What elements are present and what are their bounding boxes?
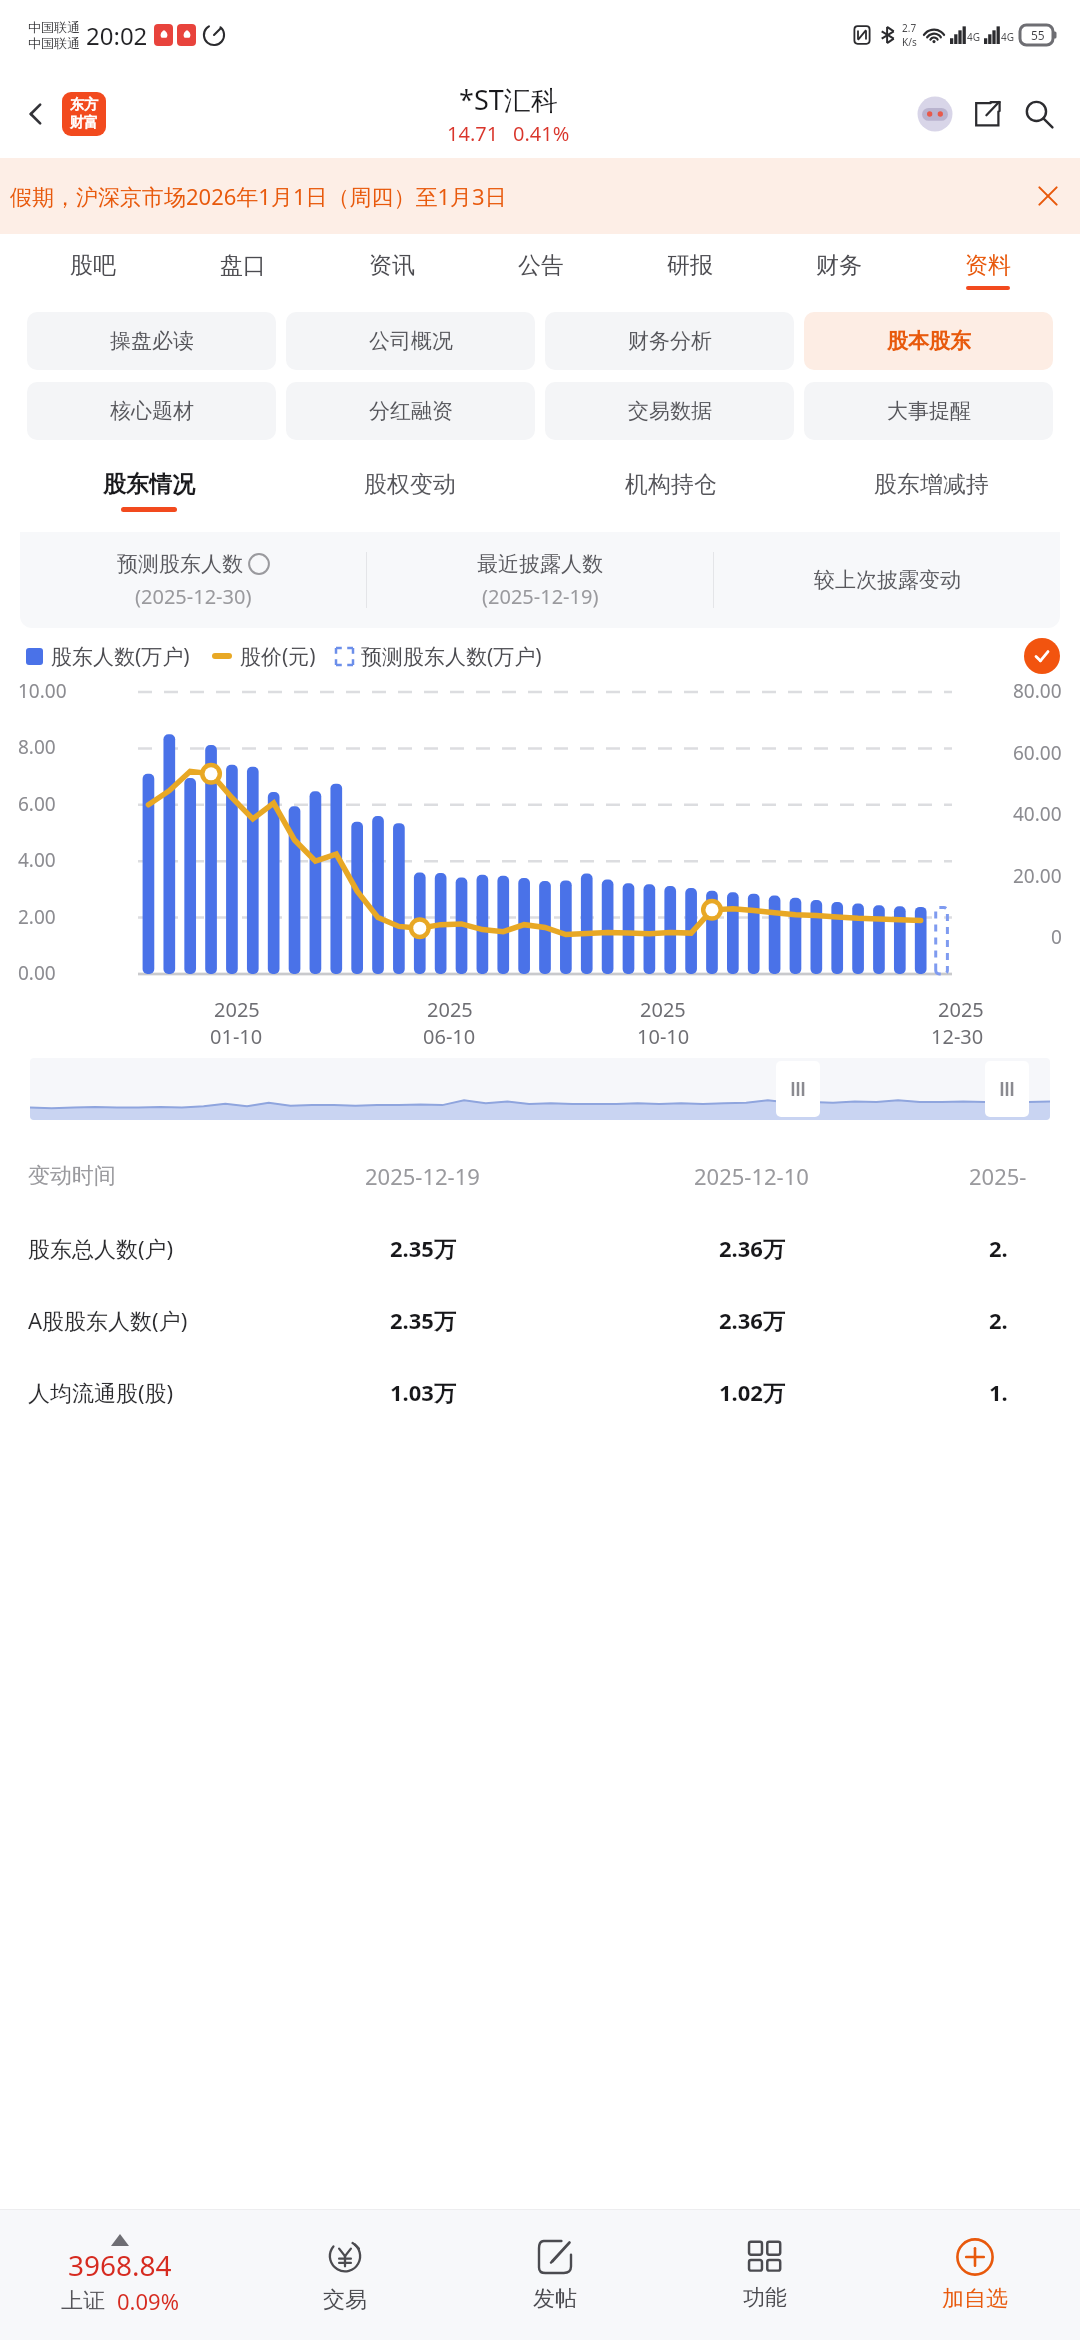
staticText: 2. (989, 1305, 1008, 1335)
staticText: 加自选 (942, 2285, 1008, 2313)
button[interactable]: 人均流通股(股) (28, 1356, 1080, 1428)
button[interactable]: 股权变动 (279, 454, 540, 528)
button[interactable]: 资讯 (317, 234, 466, 306)
button[interactable]: 机构持仓 (540, 454, 801, 528)
staticText: 股东总人数(户) (28, 1233, 258, 1263)
staticText: 财务 (816, 251, 862, 280)
button[interactable]: 公告 (466, 234, 615, 306)
button[interactable]: East Money (62, 92, 106, 136)
staticText: 3968.84 (68, 2246, 172, 2284)
staticText: 功能 (743, 2284, 787, 2312)
button[interactable]: Range handle (30, 1058, 1050, 1120)
button[interactable]: 盘口 (168, 234, 317, 306)
staticText: 预测股东人数(万户) (361, 642, 542, 671)
staticText: 01-10 (210, 1023, 263, 1050)
staticText: 4G (967, 30, 980, 44)
button[interactable]: 财务 (764, 234, 913, 306)
button[interactable]: Back (12, 90, 60, 138)
staticText: 中国联通 (28, 19, 80, 35)
staticText: 发帖 (533, 2285, 577, 2313)
staticText: 2.7 (902, 21, 917, 35)
staticText: 2025 (640, 996, 686, 1023)
staticText: 股价(元) (240, 642, 316, 671)
button[interactable]: 3968.84 (0, 2210, 240, 2340)
staticText: 变动时间 (28, 1162, 258, 1190)
staticText: 0.41% (513, 120, 570, 147)
staticText: 大事提醒 (887, 398, 971, 424)
button[interactable]: 假期，沪深京市场2026年1月1日（周四）至1月3日 (0, 158, 1080, 234)
button[interactable]: 功能 (660, 2210, 870, 2340)
staticText: 上证 (61, 2287, 105, 2315)
button[interactable]: 交易数据 (545, 382, 794, 440)
staticText: 资料 (965, 251, 1011, 280)
button[interactable]: Share (964, 91, 1010, 137)
button[interactable]: 财务分析 (545, 312, 794, 370)
staticText: 交易数据 (628, 398, 712, 424)
staticText: 20:02 (86, 19, 148, 52)
staticText: 股权变动 (364, 470, 456, 499)
button[interactable]: 交易 (240, 2210, 450, 2340)
button[interactable]: 研报 (615, 234, 764, 306)
staticText: 55 (1031, 27, 1045, 43)
button[interactable]: 核心题材 (27, 382, 276, 440)
staticText: 东方 (70, 96, 98, 114)
staticText: 2025-12-10 (694, 1161, 809, 1191)
button[interactable]: 大事提醒 (804, 382, 1053, 440)
button[interactable]: 发帖 (450, 2210, 660, 2340)
staticText: 研报 (667, 251, 713, 280)
button[interactable]: 加自选 (870, 2210, 1080, 2340)
staticText: 10.00 (18, 678, 67, 704)
staticText: 2.35万 (390, 1305, 456, 1335)
staticText: 核心题材 (110, 398, 194, 424)
staticText: 80.00 (1013, 678, 1062, 704)
button[interactable]: Range handle (776, 1061, 820, 1117)
staticText: 财富 (70, 114, 98, 132)
staticText: 分红融资 (369, 398, 453, 424)
staticText: 股东情况 (103, 470, 195, 499)
button[interactable]: Confirm (1024, 638, 1060, 674)
staticText: 1.02万 (719, 1377, 785, 1407)
staticText: (2025-12-30) (135, 583, 252, 610)
staticText: 4G (1001, 30, 1014, 44)
button[interactable]: Search (1016, 91, 1062, 137)
staticText: 较上次披露变动 (814, 567, 961, 593)
staticText: 20.00 (1013, 863, 1062, 889)
staticText: 2025 (427, 996, 473, 1023)
button[interactable]: AI assistant (912, 91, 958, 137)
button[interactable]: 股东增减持 (801, 454, 1062, 528)
staticText: 1.03万 (390, 1377, 456, 1407)
staticText: 4.00 (18, 847, 56, 873)
staticText: 操盘必读 (110, 328, 194, 354)
staticText: *ST汇科 (459, 81, 558, 118)
staticText: 股本股东 (887, 328, 971, 354)
button[interactable]: 股吧 (18, 234, 168, 306)
button[interactable]: 操盘必读 (27, 312, 276, 370)
staticText: (2025-12-19) (482, 583, 599, 610)
staticText: 2. (989, 1233, 1008, 1263)
button[interactable]: 资料 (913, 234, 1062, 306)
button[interactable]: 公司概况 (286, 312, 535, 370)
button[interactable]: 股东总人数(户) (28, 1212, 1080, 1284)
staticText: 公告 (518, 251, 564, 280)
staticText: 2.36万 (719, 1233, 785, 1263)
staticText: 2.00 (18, 904, 56, 930)
staticText: 2025 (938, 996, 984, 1023)
staticText: 40.00 (1013, 801, 1062, 827)
button[interactable]: 股本股东 (804, 312, 1053, 370)
staticText: 中国联通 (28, 35, 80, 51)
button[interactable]: 变动时间 (28, 1140, 1080, 1212)
staticText: 1. (989, 1377, 1008, 1407)
button[interactable]: Range handle (985, 1061, 1029, 1117)
staticText: 最近披露人数 (477, 551, 603, 577)
button[interactable]: A股股东人数(户) (28, 1284, 1080, 1356)
button[interactable]: Close (1020, 168, 1076, 224)
staticText: 股东增减持 (874, 470, 989, 499)
staticText: 8.00 (18, 734, 56, 760)
staticText: 股东人数(万户) (51, 642, 190, 671)
staticText: 14.71 (447, 120, 499, 147)
button[interactable]: 股东情况 (18, 454, 279, 528)
staticText: 股吧 (70, 251, 116, 280)
staticText: 0.00 (18, 960, 56, 986)
staticText: 2025-12-19 (365, 1161, 480, 1191)
button[interactable]: 分红融资 (286, 382, 535, 440)
